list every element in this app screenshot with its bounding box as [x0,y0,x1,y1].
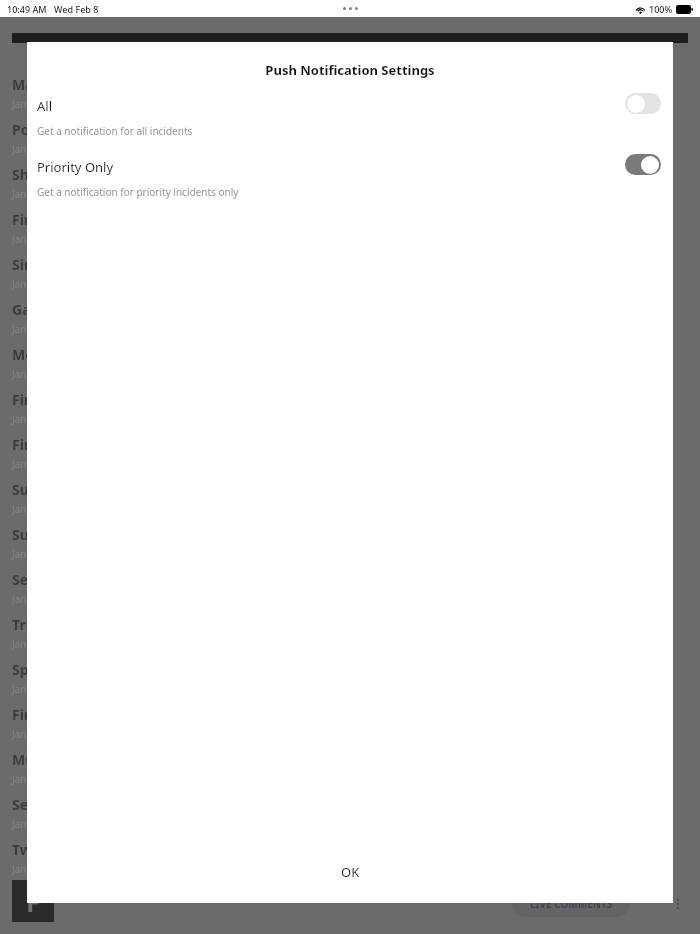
staticText: Motorcycle crash closes road [12,345,213,364]
staticText: All [37,97,53,115]
staticText: Jan 31, 2023 [12,232,69,246]
staticText: Jan 31, 2023 [12,142,69,156]
staticText: Push Notification Settings [27,61,673,79]
staticText: Jan 31, 2023 [12,817,69,831]
staticText: Get a notification for all incidents [37,124,193,138]
staticText: Suspicious package found [12,525,193,544]
staticText: Search continues for man [12,570,191,589]
button[interactable]: Settings [642,894,662,914]
staticText: Single vehicle rollover [12,255,166,274]
staticText: OK [341,863,360,881]
staticText: Man charged after crash [12,75,183,94]
staticText: Serious collision reported [12,795,190,814]
button[interactable]: OK [27,842,673,902]
staticText: Fire damages apartment [12,435,185,454]
staticText: Truck strikes pole [12,615,136,634]
staticText: Priority Only [37,158,114,176]
staticText: Fire crews battle blaze [12,210,169,229]
staticText: Jan 31, 2023 [12,547,69,561]
staticText: Firefighters respond to alarm [12,390,217,409]
staticText: Jan 31, 2023 [12,412,69,426]
staticText: Multiple units respond [12,750,170,769]
staticText: Speeding driver arrested [12,660,185,679]
staticText: Jan 31, 2023 [12,97,69,111]
staticText: Get a notification for priority incident… [37,185,239,199]
staticText: Jan 31, 2023 [12,367,69,381]
staticText: Jan 31, 2023 [12,682,69,696]
staticText: Jan 31, 2023 [12,862,69,876]
staticText: Suspect in custody [12,480,142,499]
staticText: Jan 31, 2023 [12,727,69,741]
staticText: Jan 31, 2023 [12,592,69,606]
staticText: 10:49 AM [7,3,47,15]
staticText: Garage fire under control [12,300,189,319]
staticText: Jan 31, 2023 [12,502,69,516]
staticText: Police investigate theft [12,120,175,139]
staticText: Wed Feb 8 [54,3,99,15]
staticText: Jan 31, 2023 [12,277,69,291]
staticText: Shooting reported downtown [12,165,218,184]
button[interactable]: More options [670,896,686,912]
button[interactable]: LIVE COMMENTS [512,891,630,917]
button[interactable]: Toggle Priority Only [625,154,661,175]
staticText: LIVE COMMENTS [530,897,613,911]
staticText: Jan 31, 2023 [12,322,69,336]
staticText: Fire destroys barn [12,705,138,724]
staticText: Jan 31, 2023 [12,187,69,201]
button[interactable]: Priority Only [27,158,673,199]
staticText: Jan 31, 2023 [12,457,69,471]
staticText: Two hurt in crash [12,840,133,859]
staticText: 100% [649,3,673,15]
button[interactable]: All [27,97,673,138]
staticText: Jan 31, 2023 [12,637,69,651]
staticText: F [26,884,41,919]
button[interactable]: Toggle All [625,93,661,114]
staticText: Jan 31, 2023 [12,772,69,786]
